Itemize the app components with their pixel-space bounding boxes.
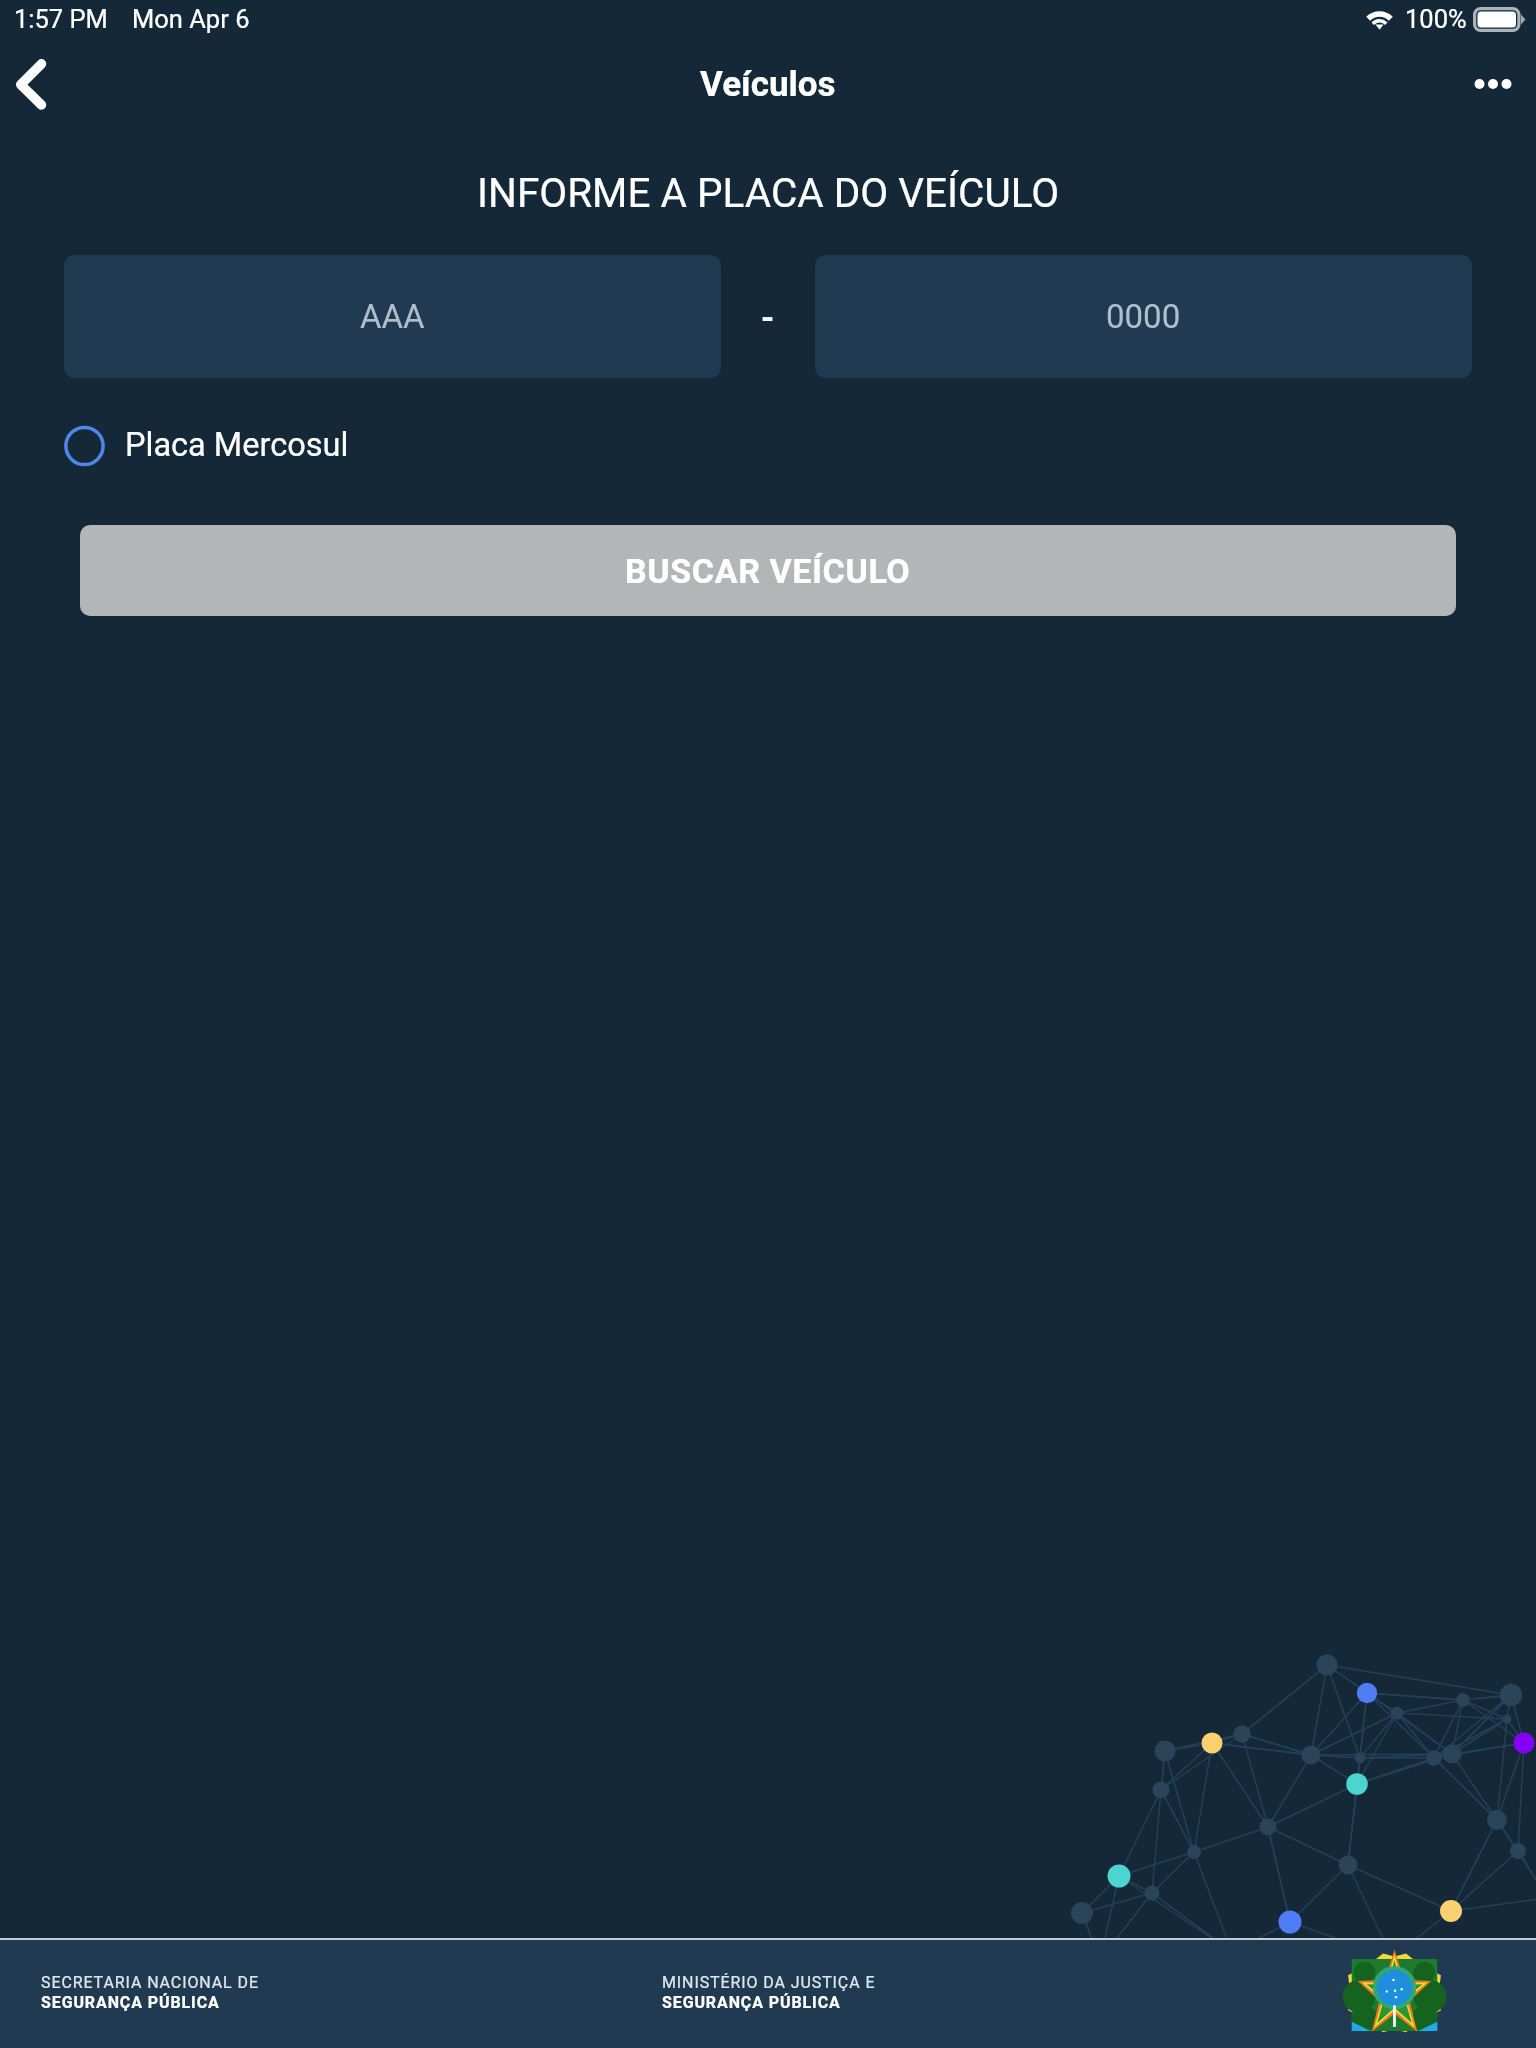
- staticText: SEGURANÇA PÚBLICA: [662, 1993, 841, 2012]
- staticText: Placa Mercosul: [125, 426, 349, 464]
- staticText: 0000: [1106, 297, 1181, 336]
- staticText: SEGURANÇA PÚBLICA: [41, 1993, 220, 2012]
- button[interactable]: Placa Mercosul: [62, 421, 349, 469]
- staticText: Mon Apr 6: [132, 4, 250, 34]
- staticText: -: [761, 297, 775, 337]
- staticText: SECRETARIA NACIONAL DE: [41, 1973, 259, 1992]
- staticText: INFORME A PLACA DO VEÍCULO: [477, 169, 1060, 216]
- staticText: Veículos: [700, 64, 836, 105]
- staticText: 1:57 PM: [14, 4, 108, 34]
- button[interactable]: 0000: [815, 255, 1472, 378]
- staticText: MINISTÉRIO DA JUSTIÇA E: [662, 1973, 876, 1992]
- button[interactable]: AAA: [64, 255, 721, 378]
- button[interactable]: Back: [0, 44, 80, 124]
- button[interactable]: More options: [1456, 44, 1536, 124]
- staticText: BUSCAR VEÍCULO: [625, 551, 911, 591]
- staticText: AAA: [360, 297, 425, 336]
- button[interactable]: BUSCAR VEÍCULO: [80, 525, 1456, 616]
- staticText: 100%: [1405, 4, 1467, 34]
